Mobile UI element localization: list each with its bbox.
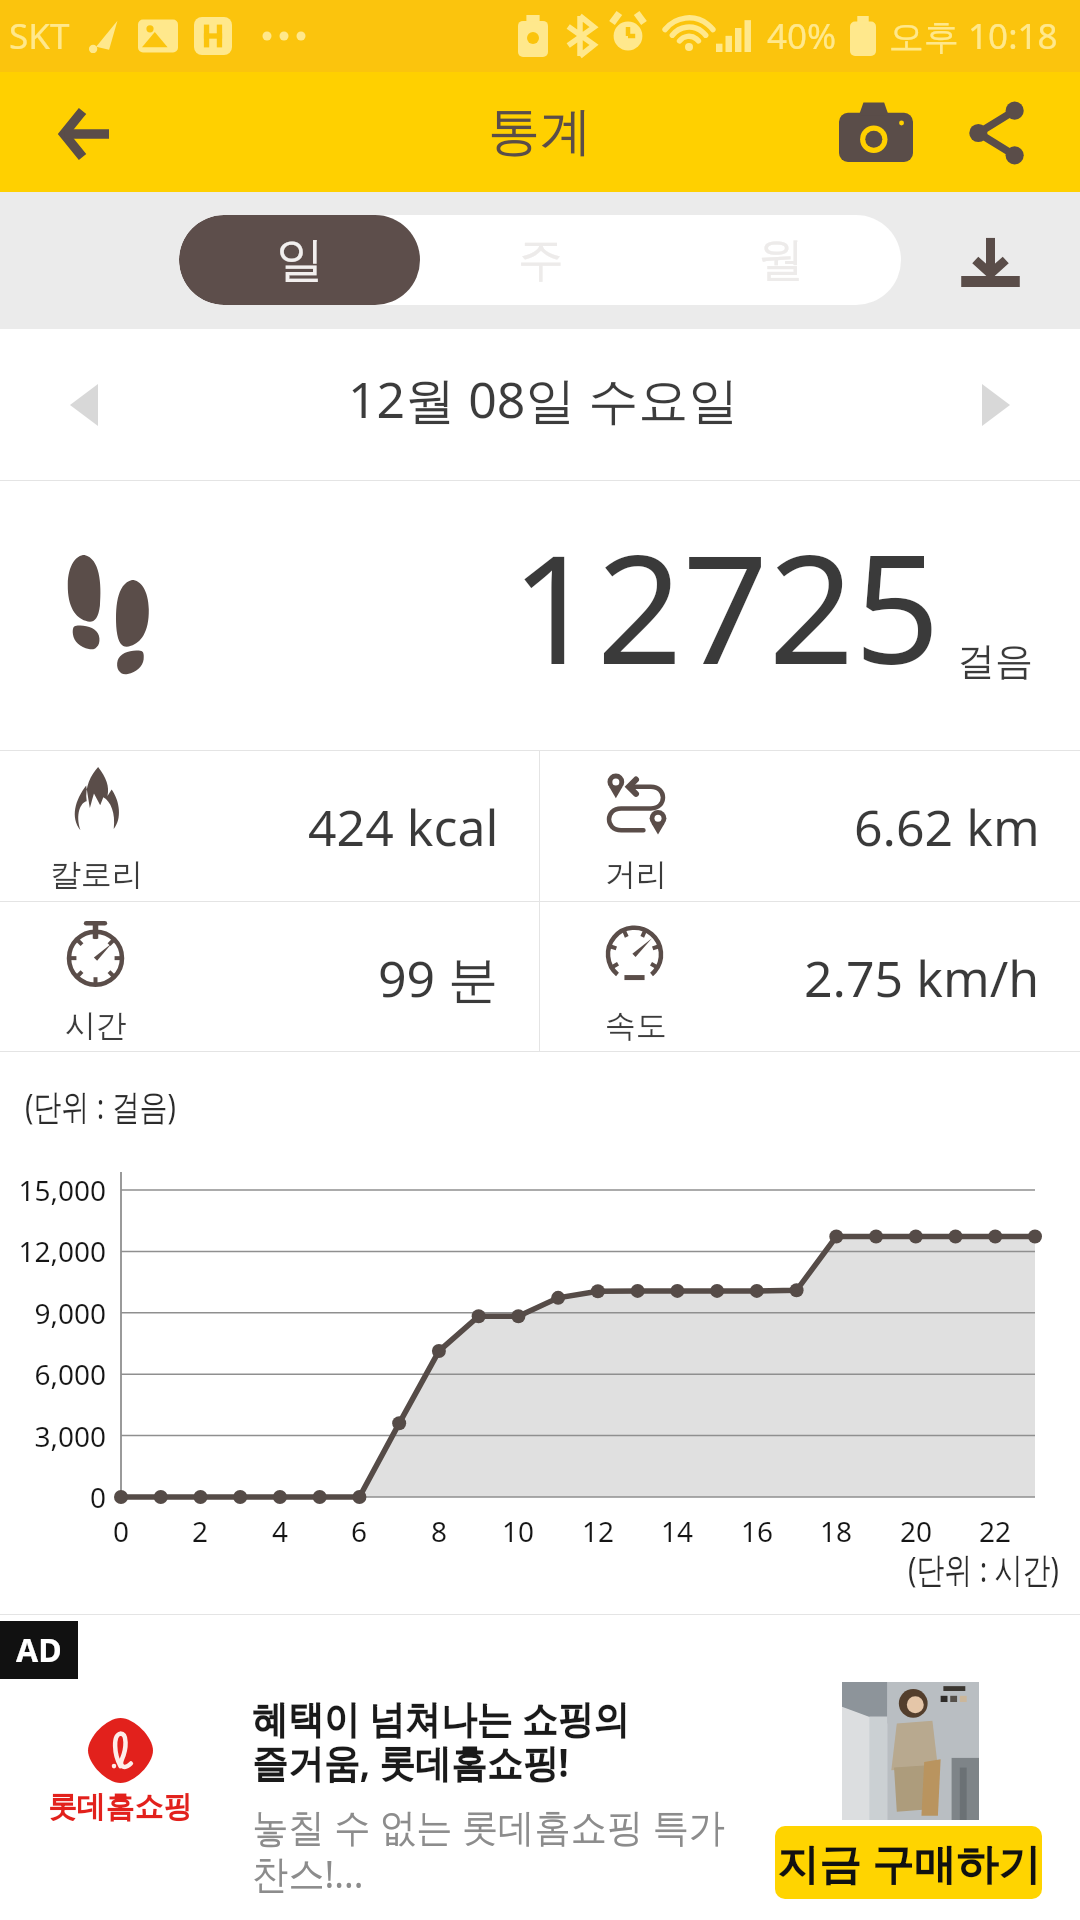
staticText: 혜택이 넘쳐나는 쇼핑의 <box>252 1691 630 1744</box>
button[interactable]: 속도 <box>540 902 1080 1051</box>
button[interactable]: Share <box>948 85 1044 181</box>
button[interactable]: Camera <box>828 84 924 180</box>
staticText: (단위 : 걸음) <box>25 1082 176 1130</box>
staticText: AD <box>16 1628 62 1672</box>
button[interactable]: 지금 구매하기 <box>775 1826 1042 1899</box>
staticText: 22 <box>955 1512 1035 1550</box>
staticText: 6 <box>319 1512 399 1550</box>
button[interactable]: Previous day <box>36 357 132 453</box>
button[interactable]: AD <box>0 1614 1080 1920</box>
staticText: 즐거움, 롯데홈쇼핑! <box>252 1735 569 1788</box>
button[interactable]: 일 <box>179 215 420 305</box>
staticText: 18 <box>796 1512 876 1550</box>
staticText: 9,000 <box>0 1294 106 1332</box>
staticText: 16 <box>717 1512 797 1550</box>
button[interactable]: Next day <box>948 357 1044 453</box>
staticText: 찬스!... <box>252 1846 364 1899</box>
staticText: 6.62 km <box>854 793 1040 861</box>
staticText: 15,000 <box>0 1171 106 1209</box>
staticText: 4 <box>240 1512 320 1550</box>
button[interactable]: Download <box>942 212 1038 308</box>
staticText: 2 <box>160 1512 240 1550</box>
staticText: 12,000 <box>0 1232 106 1270</box>
button[interactable]: 시간 <box>0 902 539 1051</box>
staticText: 거리 <box>605 855 667 894</box>
staticText: 속도 <box>605 1006 667 1045</box>
staticText: 월 <box>758 231 804 289</box>
staticText: 14 <box>637 1512 717 1550</box>
staticText: 12 <box>558 1512 638 1550</box>
staticText: 3,000 <box>0 1417 106 1455</box>
button[interactable]: 거리 <box>540 751 1080 901</box>
staticText: SKT <box>9 12 70 60</box>
staticText: 롯데홈쇼핑 <box>48 1788 192 1826</box>
staticText: 주 <box>518 231 564 289</box>
staticText: 6,000 <box>0 1355 106 1393</box>
staticText: 놓칠 수 없는 롯데홈쇼핑 특가 <box>252 1799 725 1852</box>
button[interactable]: 월 <box>661 215 901 305</box>
staticText: 오후 10:18 <box>889 12 1058 60</box>
staticText: 일 <box>276 230 324 290</box>
staticText: 걸음 <box>957 637 1033 685</box>
staticText: 칼로리 <box>50 855 143 894</box>
button[interactable]: 칼로리 <box>0 751 539 901</box>
staticText: 2.75 km/h <box>804 944 1040 1012</box>
staticText: 지금 구매하기 <box>777 1834 1040 1891</box>
button[interactable]: Back <box>38 86 134 182</box>
staticText: 0 <box>81 1512 161 1550</box>
staticText: 8 <box>399 1512 479 1550</box>
staticText: 99 분 <box>378 944 499 1012</box>
staticText: 10 <box>478 1512 558 1550</box>
staticText: 40% <box>767 12 837 60</box>
staticText: 통계 <box>488 99 592 165</box>
staticText: (단위 : 시간) <box>908 1545 1059 1593</box>
staticText: 시간 <box>65 1006 127 1045</box>
staticText: 20 <box>876 1512 956 1550</box>
staticText: 424 kcal <box>308 793 499 861</box>
staticText: 0 <box>0 1478 106 1516</box>
staticText: 12월 08일 수요일 <box>348 365 739 433</box>
staticText: 12725 <box>511 504 941 708</box>
